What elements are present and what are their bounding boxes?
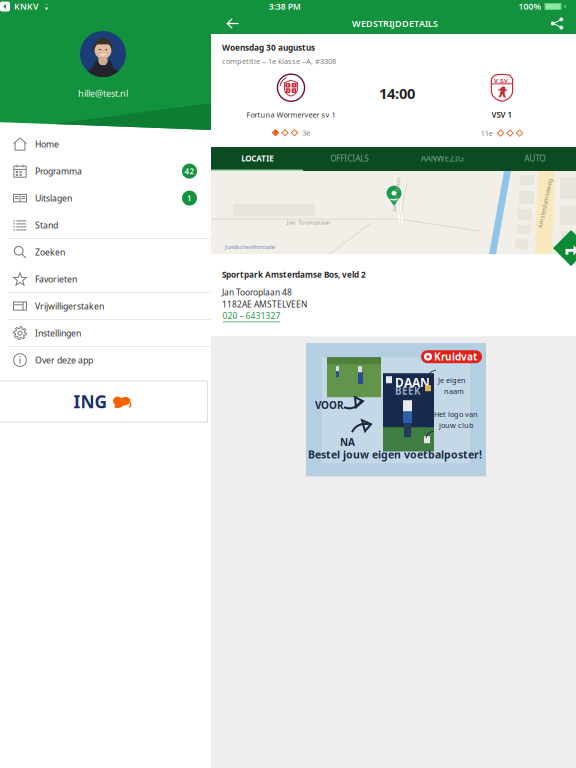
button[interactable]: 020 – 6431327 xyxy=(222,311,281,322)
staticText: naam xyxy=(444,386,464,396)
staticText: KNKV xyxy=(14,1,38,12)
staticText: V.S.V. xyxy=(494,77,510,85)
button[interactable]: ING xyxy=(0,381,207,422)
button[interactable]: Advertentie Kruidvat, bestel jouw eigen … xyxy=(306,343,486,476)
button[interactable]: Terug xyxy=(215,13,251,34)
button[interactable]: Over deze app xyxy=(0,347,211,374)
staticText: 42 xyxy=(184,166,194,177)
staticText: Over deze app xyxy=(35,354,93,366)
staticText: Sportpark Amsterdamse Bos, veld 2 xyxy=(222,269,366,280)
button[interactable]: Delen xyxy=(539,13,575,34)
staticText: Programma xyxy=(35,165,82,177)
button[interactable]: OFFICIALS xyxy=(303,147,396,171)
staticText: Woensdag 30 augustus xyxy=(222,42,315,53)
button[interactable]: Programma xyxy=(0,158,211,185)
staticText: 100% xyxy=(518,1,541,12)
staticText: 11e xyxy=(481,128,493,138)
staticText: 1 xyxy=(187,193,192,204)
staticText: 1182AE AMSTELVEEN xyxy=(222,298,307,310)
button[interactable]: Zoeken xyxy=(0,239,211,266)
staticText: 3e xyxy=(302,128,310,138)
staticText: Het logo van xyxy=(434,409,478,419)
staticText: AANWEZIG xyxy=(421,153,464,164)
staticText: ING xyxy=(73,390,107,413)
staticText: 14:00 xyxy=(379,83,415,103)
staticText: Kruidvat xyxy=(434,350,477,363)
button[interactable]: Uitslagen xyxy=(0,185,211,212)
staticText: Vrijwilligerstaken xyxy=(35,300,104,312)
staticText: Jan Tooroplaan xyxy=(379,191,413,198)
staticText: NA xyxy=(340,435,355,449)
staticText: WEDSTRIJDDETAILS xyxy=(352,17,438,30)
button[interactable]: LOCATIE xyxy=(211,147,303,171)
staticText: competitie – 1e klasse –A, #3308 xyxy=(222,56,336,66)
staticText: AUTO xyxy=(524,153,545,164)
staticText: Uitslagen xyxy=(35,192,72,204)
button[interactable]: AANWEZIG xyxy=(396,147,488,171)
staticText: Home xyxy=(35,138,59,150)
staticText: hille@test.nl xyxy=(78,87,128,99)
staticText: 020 – 6431327 xyxy=(222,310,280,321)
staticText: VSV 1 xyxy=(491,109,512,120)
staticText: Stand xyxy=(35,219,58,231)
button[interactable]: Stand xyxy=(0,212,211,239)
staticText: Zoeken xyxy=(35,246,65,258)
staticText: Bestel jouw eigen voetbalposter! xyxy=(308,447,482,461)
button[interactable]: Route xyxy=(553,230,576,266)
staticText: 3:38 PM xyxy=(269,1,301,12)
button[interactable]: Vrijwilligerstaken xyxy=(0,293,211,320)
staticText: VOOR xyxy=(315,398,344,412)
staticText: Juridische informatie xyxy=(225,243,275,251)
staticText: jouw club xyxy=(439,420,474,430)
staticText: Jan Tooroplaan 48 xyxy=(222,286,292,298)
staticText: Favorieten xyxy=(35,273,77,285)
staticText: Instellingen xyxy=(35,327,81,339)
staticText: OFFICIALS xyxy=(330,153,369,164)
staticText: LOCATIE xyxy=(241,153,273,164)
staticText: Amsterdamseweg xyxy=(519,199,570,207)
staticText: Fortuna Wormerveer sv 1 xyxy=(246,110,335,120)
button[interactable]: AUTO xyxy=(488,147,576,171)
staticText: BEEK xyxy=(395,384,421,398)
staticText: Je eigen xyxy=(438,375,466,385)
staticText: DAAN xyxy=(395,374,430,390)
button[interactable]: Favorieten xyxy=(0,266,211,293)
button[interactable]: Home xyxy=(0,131,211,158)
staticText: Jan Tooroplaan xyxy=(287,218,331,226)
button[interactable]: Instellingen xyxy=(0,320,211,347)
